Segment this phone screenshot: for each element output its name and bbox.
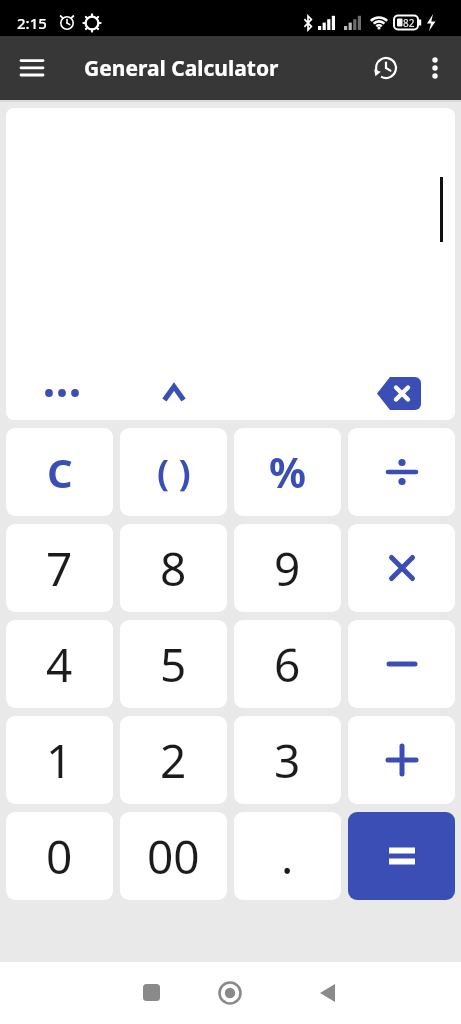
- button[interactable]: [26, 371, 98, 415]
- staticText: 4: [46, 633, 73, 696]
- button[interactable]: [348, 524, 455, 612]
- button[interactable]: ( ): [120, 428, 227, 516]
- button[interactable]: %: [234, 428, 341, 516]
- button[interactable]: 00: [120, 812, 227, 900]
- staticText: 0: [46, 825, 73, 888]
- button[interactable]: 4: [6, 620, 113, 708]
- staticText: 9: [274, 537, 301, 600]
- staticText: General Calculator: [84, 54, 279, 83]
- button[interactable]: 9: [234, 524, 341, 612]
- button[interactable]: 6: [234, 620, 341, 708]
- button[interactable]: [413, 46, 457, 90]
- button[interactable]: C: [6, 428, 113, 516]
- staticText: .: [281, 825, 294, 888]
- staticText: 2:15: [17, 13, 47, 33]
- staticText: 3: [274, 729, 301, 792]
- staticText: ( ): [157, 448, 191, 497]
- button[interactable]: [367, 363, 431, 420]
- button[interactable]: [122, 963, 182, 1023]
- staticText: 1: [46, 729, 73, 792]
- button[interactable]: 8: [120, 524, 227, 612]
- button[interactable]: [348, 812, 455, 900]
- staticText: %: [269, 444, 306, 500]
- button[interactable]: 1: [6, 716, 113, 804]
- staticText: 7: [46, 537, 73, 600]
- staticText: 8: [160, 537, 187, 600]
- button[interactable]: [144, 371, 204, 415]
- staticText: 2: [160, 729, 187, 792]
- button[interactable]: .: [234, 812, 341, 900]
- button[interactable]: 0: [6, 812, 113, 900]
- button[interactable]: [10, 46, 54, 90]
- button[interactable]: 7: [6, 524, 113, 612]
- button[interactable]: [348, 716, 455, 804]
- staticText: 6: [274, 633, 301, 696]
- button[interactable]: [363, 46, 407, 90]
- button[interactable]: 5: [120, 620, 227, 708]
- button[interactable]: 2: [120, 716, 227, 804]
- button[interactable]: [298, 963, 358, 1023]
- staticText: 5: [160, 633, 187, 696]
- button[interactable]: [348, 428, 455, 516]
- staticText: C: [47, 445, 73, 499]
- staticText: 82: [403, 16, 415, 30]
- staticText: 00: [147, 825, 200, 888]
- button[interactable]: [348, 620, 455, 708]
- button[interactable]: 3: [234, 716, 341, 804]
- button[interactable]: [200, 963, 260, 1023]
